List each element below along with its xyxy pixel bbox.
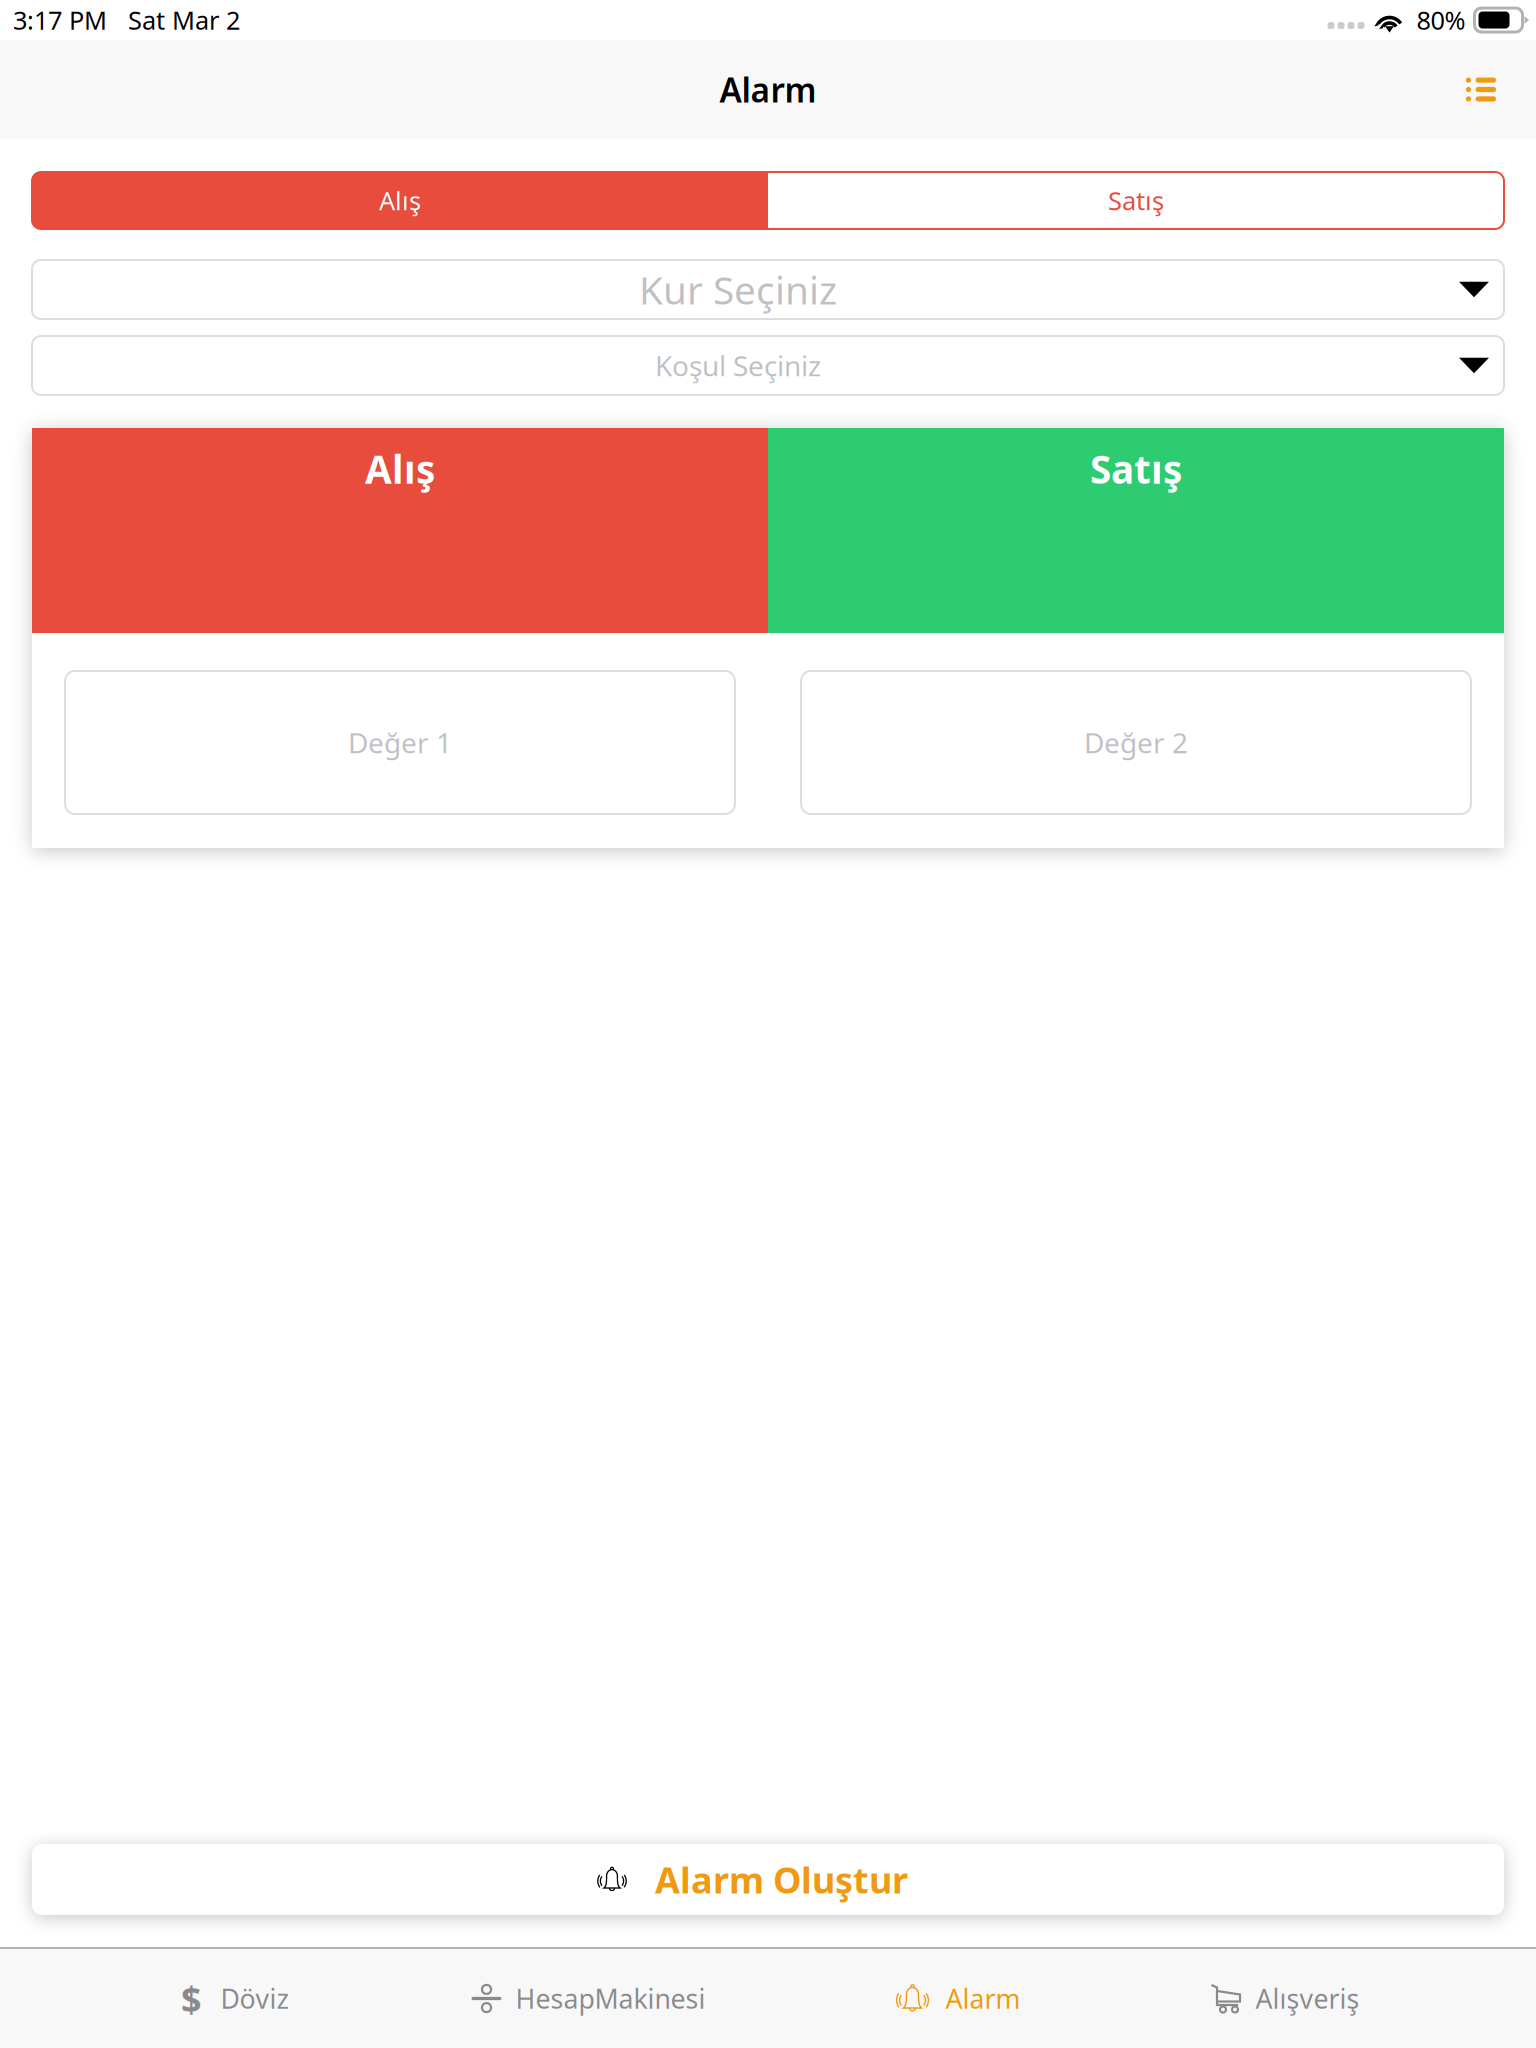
staticText: Satış: [1090, 443, 1182, 494]
button[interactable]: Alışveriş: [1210, 1949, 1359, 2048]
staticText: Alışveriş: [1255, 1981, 1359, 2016]
button[interactable]: Kur Seçiniz: [32, 260, 1504, 319]
staticText: $: [181, 1975, 202, 2022]
staticText: HesapMakinesi: [515, 1981, 705, 2016]
button[interactable]: HesapMakinesi: [471, 1949, 705, 2048]
button[interactable]: Koşul Seçiniz: [32, 336, 1504, 395]
staticText: Kur Seçiniz: [639, 264, 837, 315]
staticText: Alış: [365, 443, 435, 494]
staticText: Alarm: [719, 67, 816, 112]
staticText: Döviz: [220, 1981, 289, 2016]
staticText: Alarm Oluştur: [655, 1856, 908, 1903]
button[interactable]: Alarm list: [1446, 54, 1516, 124]
button[interactable]: Satış: [768, 172, 1504, 229]
staticText: Değer 1: [348, 724, 452, 761]
staticText: Satış: [1108, 184, 1164, 217]
staticText: Koşul Seçiniz: [655, 347, 821, 384]
staticText: 80%: [1416, 3, 1465, 37]
staticText: Sat Mar 2: [128, 3, 240, 37]
staticText: Değer 2: [1084, 724, 1188, 761]
button[interactable]: Alarm: [893, 1949, 1020, 2048]
button[interactable]: $: [176, 1949, 289, 2048]
staticText: 3:17 PM: [13, 3, 107, 37]
button[interactable]: Alarm Oluştur: [32, 1844, 1504, 1915]
staticText: Alış: [379, 184, 421, 217]
staticText: Alarm: [945, 1981, 1020, 2016]
button[interactable]: Alış: [32, 172, 768, 229]
